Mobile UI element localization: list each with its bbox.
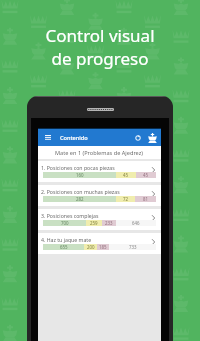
staticText: 200 — [87, 244, 95, 250]
staticText: 233 — [105, 220, 113, 226]
staticText: 1. Posiciones con pocas piezas — [41, 164, 115, 171]
staticText: 733 — [129, 244, 137, 250]
staticText: 700 — [61, 220, 69, 226]
staticText: 72 — [123, 196, 129, 202]
button[interactable]: Chess piece — [147, 129, 158, 146]
staticText: 2. Posiciones con muchas piezas — [41, 188, 120, 195]
staticText: Mate en 1 (Problemas de Ajedrez) — [55, 149, 144, 157]
staticText: 3. Posiciones complejas — [41, 212, 99, 219]
staticText: 655 — [60, 244, 68, 250]
staticText: 4. Haz tu jaque mate — [41, 236, 92, 243]
staticText: de progreso — [51, 47, 149, 70]
staticText: Control visual — [45, 24, 155, 47]
button[interactable]: 2. Posiciones con muchas piezas — [38, 185, 161, 206]
staticText: 45 — [123, 172, 129, 178]
button[interactable]: Open navigation menu — [42, 129, 53, 146]
staticText: 646 — [132, 220, 140, 226]
staticText: 81 — [143, 196, 149, 202]
button[interactable]: 3. Posiciones complejas — [38, 209, 161, 230]
staticText: 282 — [76, 196, 84, 202]
staticText: 259 — [90, 220, 98, 226]
staticText: 45 — [143, 172, 149, 178]
button[interactable]: Refresh — [132, 129, 143, 146]
button[interactable]: Mate en 1 (Problemas de Ajedrez) — [38, 146, 161, 159]
button[interactable]: 1. Posiciones con pocas piezas — [38, 161, 161, 182]
button[interactable]: 4. Haz tu jaque mate — [38, 233, 161, 254]
staticText: 160 — [76, 172, 84, 178]
staticText: 185 — [99, 244, 107, 250]
staticText: Contenido — [60, 134, 88, 142]
